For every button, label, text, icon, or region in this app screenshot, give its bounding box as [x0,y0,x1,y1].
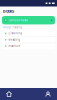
staticText: Unlock Tests [9,19,27,22]
button[interactable]: Listening [2,30,55,36]
button[interactable]: Home [3,88,15,100]
staticText: Listening [8,32,22,35]
button[interactable]: Unlock Tests [2,16,55,24]
staticText: Books [3,9,14,14]
staticText: Practice [8,44,20,48]
button[interactable]: Profile [42,88,54,100]
staticText: Keep Talking [3,26,22,29]
staticText: Reading [8,38,20,41]
button[interactable]: Practice [2,43,55,49]
button[interactable]: Reading [2,37,55,43]
